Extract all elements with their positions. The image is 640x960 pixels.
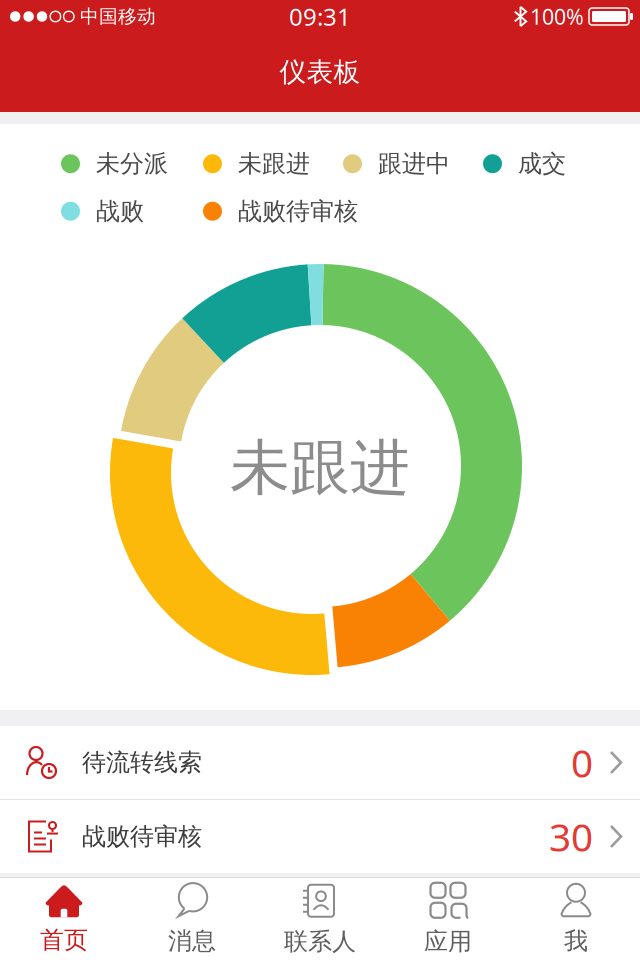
button[interactable]: 首页 xyxy=(0,878,128,959)
button[interactable]: 联系人 xyxy=(256,878,384,959)
button[interactable]: 待流转线索 xyxy=(0,726,640,799)
button[interactable]: 我 xyxy=(512,878,640,959)
staticText: 未跟进 xyxy=(238,149,310,178)
staticText: 首页 xyxy=(40,925,88,955)
staticText: 应用 xyxy=(424,927,472,956)
staticText: 未分派 xyxy=(96,149,168,178)
staticText: 跟进中 xyxy=(378,149,450,178)
staticText: 成交 xyxy=(518,149,566,178)
staticText: 中国移动 xyxy=(80,5,156,28)
staticText: 战败待审核 xyxy=(82,822,202,851)
button[interactable]: 战败待审核 xyxy=(0,800,640,873)
staticText: 我 xyxy=(564,926,588,956)
staticText: 未跟进 xyxy=(230,431,410,505)
staticText: 待流转线索 xyxy=(82,748,202,777)
staticText: 仪表板 xyxy=(279,56,360,88)
button[interactable]: 应用 xyxy=(384,878,512,959)
staticText: 100% xyxy=(530,2,584,31)
staticText: 战败 xyxy=(96,196,144,226)
staticText: 30 xyxy=(549,811,593,862)
staticText: 战败待审核 xyxy=(238,196,358,226)
staticText: 09:31 xyxy=(289,1,351,32)
staticText: 消息 xyxy=(168,926,216,956)
staticText: 联系人 xyxy=(284,927,356,956)
button[interactable]: 消息 xyxy=(128,878,256,959)
staticText: 0 xyxy=(571,737,593,788)
